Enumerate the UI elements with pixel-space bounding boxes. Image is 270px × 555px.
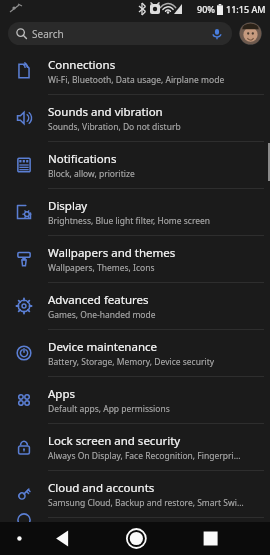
staticText: Sounds, Vibration, Do not disturb — [48, 121, 181, 133]
button[interactable]: Search — [8, 22, 232, 45]
staticText: Default apps, App permissions — [48, 403, 170, 415]
staticText: Search — [32, 27, 64, 41]
staticText: Cloud and accounts — [48, 480, 155, 496]
staticText: Connections — [48, 57, 116, 73]
button[interactable]: Home — [108, 522, 162, 555]
staticText: Sounds and vibration — [48, 104, 163, 120]
staticText: Block, allow, prioritize — [48, 168, 135, 180]
button[interactable]: Lock screen and security — [0, 424, 270, 470]
staticText: Lock screen and security — [48, 433, 181, 449]
staticText: Device maintenance — [48, 339, 158, 355]
button[interactable]: Back — [20, 522, 74, 555]
button[interactable]: Apps — [0, 377, 270, 423]
staticText: Wallpapers, Themes, Icons — [48, 262, 155, 274]
staticText: Always On Display, Face Recognition, Fin… — [48, 450, 241, 462]
button[interactable]: Voice search — [210, 27, 224, 41]
button[interactable]: Display — [0, 189, 270, 235]
staticText: Display — [48, 198, 88, 214]
staticText: Wi-Fi, Bluetooth, Data usage, Airplane m… — [48, 74, 225, 86]
button[interactable]: Cloud and accounts — [0, 471, 270, 517]
button[interactable]: Notifications — [0, 142, 270, 188]
staticText: Brightness, Blue light filter, Home scre… — [48, 215, 211, 227]
staticText: Wallpapers and themes — [48, 245, 176, 261]
button[interactable]: Advanced features — [0, 283, 270, 329]
button[interactable]: Profile — [239, 22, 262, 45]
button[interactable]: Google — [0, 518, 270, 522]
button[interactable]: Wallpapers and themes — [0, 236, 270, 282]
staticText: Notifications — [48, 151, 117, 167]
staticText: Games, One-handed mode — [48, 309, 156, 321]
staticText: Samsung Cloud, Backup and restore, Smart… — [48, 497, 244, 509]
button[interactable]: Recents — [198, 522, 252, 555]
staticText: Apps — [48, 386, 76, 402]
staticText: 90% — [197, 3, 215, 15]
staticText: Battery, Storage, Memory, Device securit… — [48, 356, 215, 368]
button[interactable]: Sounds and vibration — [0, 95, 270, 141]
staticText: Advanced features — [48, 292, 149, 308]
button[interactable]: Device maintenance — [0, 330, 270, 376]
staticText: 11:15 AM — [226, 3, 266, 15]
button[interactable]: Connections — [0, 48, 270, 94]
